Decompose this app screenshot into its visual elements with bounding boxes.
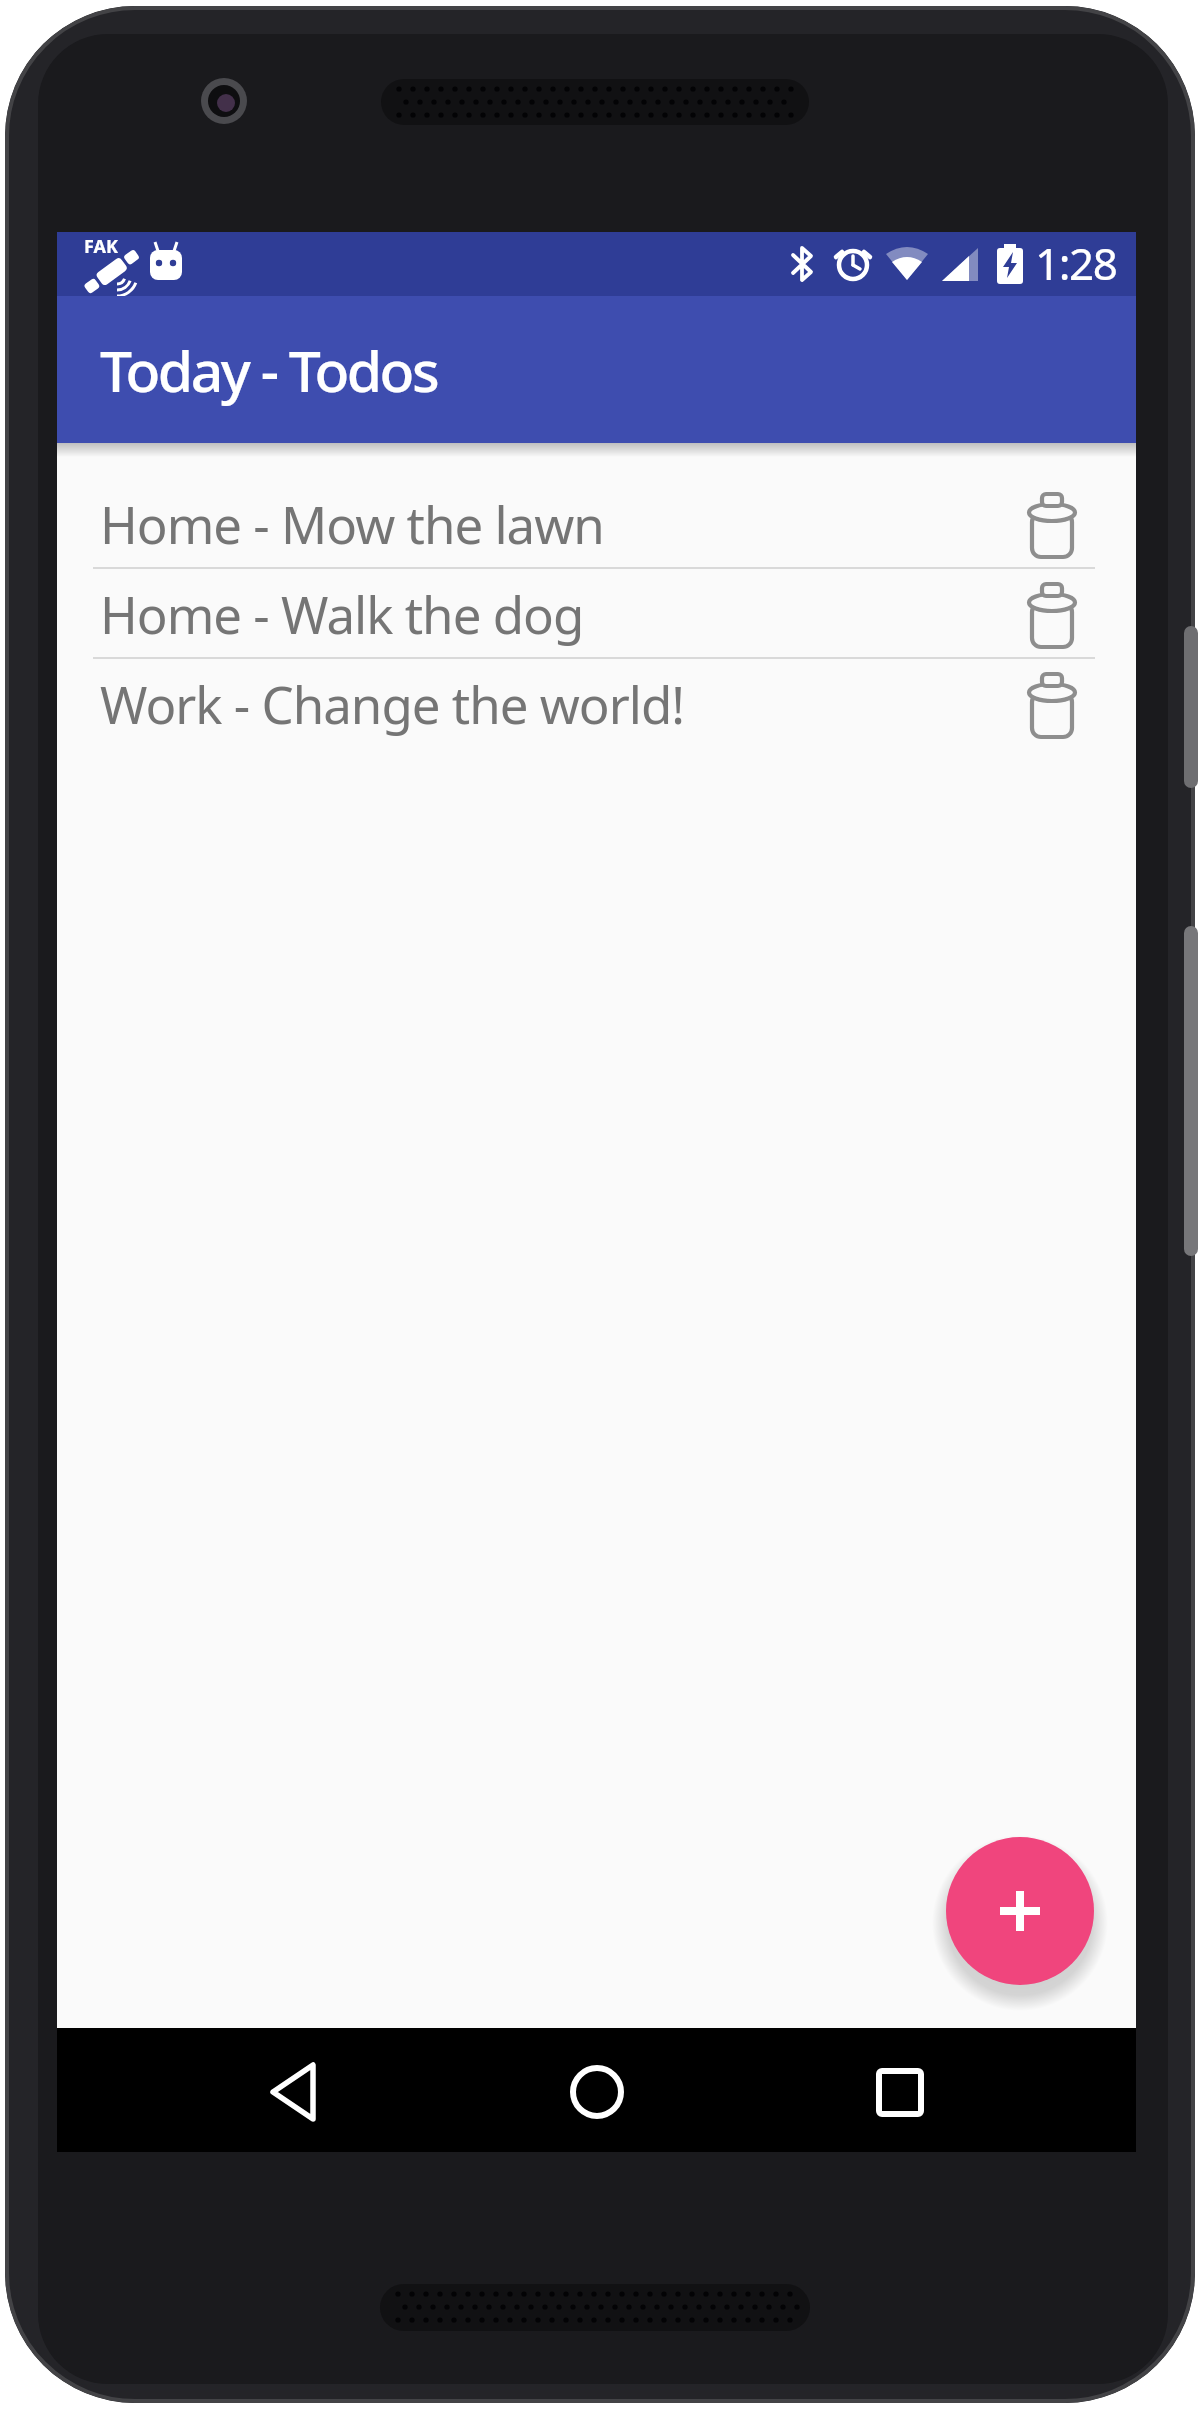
button[interactable]: Home - Mow the lawn <box>57 479 1136 567</box>
staticText: Home - Mow the lawn <box>100 489 604 558</box>
staticText: Work - Change the world! <box>100 669 684 738</box>
staticText: FAK <box>84 234 118 259</box>
button[interactable]: Work - Change the world! <box>57 659 1136 747</box>
button[interactable] <box>569 2064 625 2120</box>
button[interactable] <box>946 1837 1094 1985</box>
staticText: Today - Todos <box>100 331 438 409</box>
button[interactable] <box>1027 493 1077 559</box>
button[interactable] <box>267 2064 323 2120</box>
button[interactable] <box>872 2064 928 2120</box>
button[interactable]: Home - Walk the dog <box>57 569 1136 657</box>
staticText: Home - Walk the dog <box>100 579 584 648</box>
button[interactable] <box>1027 673 1077 739</box>
button[interactable] <box>1027 583 1077 649</box>
staticText: 1:28 <box>1035 233 1117 293</box>
